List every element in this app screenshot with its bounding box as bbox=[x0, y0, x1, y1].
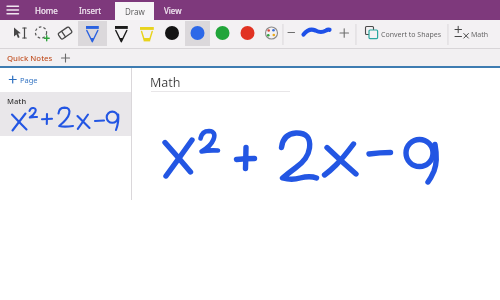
button[interactable] bbox=[54, 22, 76, 47]
button[interactable] bbox=[2, 1, 24, 19]
button[interactable] bbox=[337, 22, 351, 47]
button[interactable] bbox=[0, 70, 131, 90]
button[interactable] bbox=[31, 22, 52, 47]
staticText: Math bbox=[7, 96, 27, 106]
staticText: Draw bbox=[125, 6, 145, 17]
button[interactable] bbox=[109, 22, 134, 47]
staticText: Math bbox=[150, 74, 181, 91]
button[interactable]: Insert bbox=[73, 0, 107, 20]
staticText: Home bbox=[35, 5, 58, 16]
staticText: Math bbox=[471, 30, 489, 40]
button[interactable] bbox=[0, 92, 131, 136]
button[interactable] bbox=[360, 22, 446, 47]
button[interactable]: View bbox=[156, 0, 189, 20]
button[interactable] bbox=[451, 22, 496, 47]
button[interactable] bbox=[237, 22, 258, 47]
button[interactable]: Home bbox=[30, 0, 63, 20]
button[interactable] bbox=[78, 21, 107, 46]
button[interactable] bbox=[8, 22, 30, 47]
staticText: Convert to Shapes bbox=[381, 30, 442, 40]
button[interactable] bbox=[185, 21, 210, 46]
button[interactable] bbox=[0, 49, 500, 66]
staticText: Insert bbox=[79, 5, 102, 16]
button[interactable] bbox=[298, 22, 336, 47]
button[interactable]: Draw bbox=[115, 2, 154, 20]
button[interactable] bbox=[284, 22, 297, 47]
staticText: View bbox=[164, 5, 182, 16]
staticText: Quick Notes bbox=[7, 53, 53, 64]
button[interactable] bbox=[162, 22, 183, 47]
button[interactable] bbox=[260, 22, 282, 47]
staticText: Page bbox=[20, 75, 38, 85]
button[interactable] bbox=[135, 22, 159, 47]
button[interactable] bbox=[212, 22, 233, 47]
